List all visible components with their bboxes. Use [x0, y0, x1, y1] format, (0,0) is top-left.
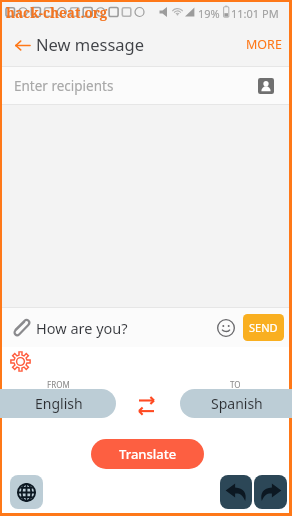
staticText: FROM [47, 379, 70, 390]
staticText: MORE [246, 36, 282, 53]
staticText: How are you? [36, 318, 128, 338]
button[interactable]: SEND [243, 314, 284, 341]
staticText: Translate [119, 445, 177, 463]
button[interactable]: MORE [237, 24, 289, 66]
button[interactable]: Insert emoji [215, 308, 242, 347]
button[interactable]: Spanish [180, 389, 292, 418]
staticText: Spanish [211, 394, 263, 413]
button[interactable]: Translate [91, 439, 204, 469]
staticText: hack-cheat.org [6, 4, 108, 22]
button[interactable]: English [0, 389, 116, 418]
button[interactable]: Attach file [2, 308, 33, 347]
staticText: 19% [198, 6, 220, 21]
button[interactable]: Pick contacts [258, 78, 274, 94]
button[interactable]: Redo [254, 475, 287, 509]
staticText: 11:01 PM [231, 6, 279, 21]
staticText: English [35, 394, 83, 413]
button[interactable]: Back [2, 24, 37, 66]
staticText: SEND [249, 320, 278, 335]
staticText: Enter recipients [14, 77, 114, 95]
staticText: TO [230, 379, 241, 390]
button[interactable]: Undo [220, 475, 252, 509]
button[interactable]: Swap languages [138, 397, 155, 414]
button[interactable]: Settings [10, 351, 31, 372]
button[interactable]: Change language [10, 475, 43, 509]
staticText: New message [36, 33, 145, 55]
